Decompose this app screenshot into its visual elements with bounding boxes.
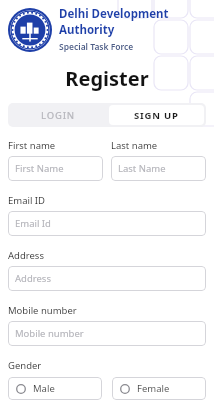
- button[interactable]: SIGN UP: [109, 105, 204, 125]
- staticText: Email Id: [15, 217, 51, 230]
- staticText: Register: [0, 65, 214, 92]
- staticText: Address: [8, 249, 44, 262]
- staticText: LOGIN: [41, 109, 75, 122]
- button[interactable]: Email Id: [8, 211, 206, 236]
- staticText: Last name: [111, 139, 158, 152]
- staticText: Mobile number: [8, 304, 77, 317]
- staticText: Gender: [8, 359, 42, 372]
- staticText: First name: [8, 139, 56, 152]
- button[interactable]: Female: [112, 377, 206, 400]
- staticText: First Name: [15, 162, 64, 175]
- staticText: Special Task Force: [59, 41, 134, 53]
- button[interactable]: LOGIN: [8, 103, 107, 127]
- button[interactable]: Male: [8, 377, 102, 400]
- button[interactable]: First Name: [8, 156, 103, 181]
- button[interactable]: Mobile number: [8, 321, 206, 346]
- other: DDA logo: [8, 8, 52, 52]
- staticText: Delhi Development: [59, 6, 169, 22]
- staticText: SIGN UP: [134, 109, 179, 122]
- staticText: Last Name: [118, 162, 166, 175]
- button[interactable]: Last Name: [111, 156, 206, 181]
- staticText: Mobile number: [15, 327, 84, 340]
- staticText: Female: [137, 382, 170, 395]
- staticText: Address: [15, 272, 51, 285]
- staticText: Email ID: [8, 194, 46, 207]
- staticText: Male: [33, 382, 55, 395]
- staticText: Authority: [59, 22, 115, 38]
- button[interactable]: Address: [8, 266, 206, 291]
